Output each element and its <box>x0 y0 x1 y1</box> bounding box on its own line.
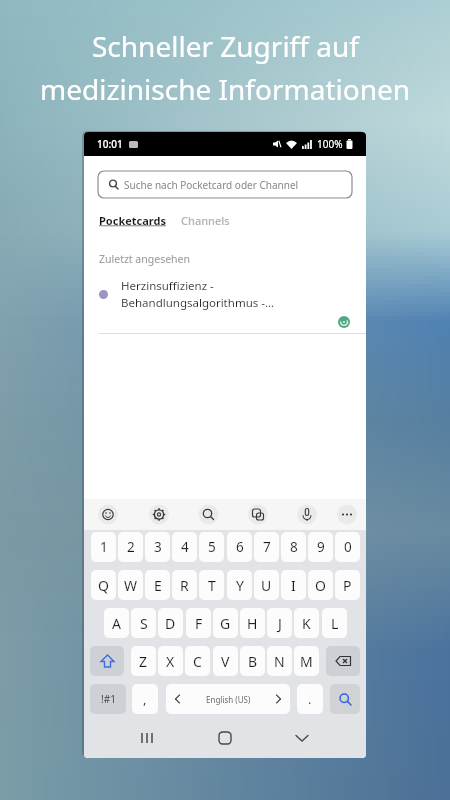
button[interactable]: X <box>158 646 183 676</box>
button[interactable]: 4 <box>172 532 197 562</box>
staticText: G <box>220 614 231 633</box>
staticText: J <box>278 614 282 633</box>
staticText: X <box>166 652 175 671</box>
button[interactable]: M <box>294 646 319 676</box>
staticText: Suche nach Pocketcard oder Channel <box>124 178 299 192</box>
staticText: 9 <box>317 538 325 556</box>
button[interactable]: T <box>199 570 224 600</box>
staticText: B <box>248 652 258 671</box>
button[interactable]: English (US) <box>166 684 290 714</box>
button[interactable]: Suche nach Pocketcard oder Channel <box>98 171 352 198</box>
button[interactable]: Y <box>227 570 252 600</box>
button[interactable]: R <box>172 570 197 600</box>
button[interactable]: V <box>213 646 238 676</box>
button[interactable] <box>326 646 360 676</box>
button[interactable]: K <box>294 608 319 638</box>
button[interactable]: , <box>132 684 158 714</box>
button[interactable] <box>319 499 366 530</box>
button[interactable]: O <box>308 570 333 600</box>
staticText: 6 <box>236 538 244 556</box>
staticText: Channels <box>181 213 230 228</box>
button[interactable] <box>272 720 366 758</box>
button[interactable]: 7 <box>254 532 279 562</box>
staticText: A <box>112 614 121 633</box>
staticText: 0 <box>344 538 352 556</box>
button[interactable]: G <box>213 608 238 638</box>
button[interactable]: 1 <box>91 532 116 562</box>
staticText: English (US) <box>206 694 251 705</box>
staticText: Zuletzt angesehen <box>99 252 190 266</box>
button[interactable]: P <box>335 570 360 600</box>
staticText: K <box>302 614 311 633</box>
button[interactable]: H <box>240 608 265 638</box>
staticText: P <box>343 576 352 595</box>
staticText: 2 <box>127 538 135 556</box>
staticText: C <box>193 652 202 671</box>
staticText: 4 <box>181 538 189 556</box>
button[interactable] <box>178 720 272 758</box>
staticText: Pocketcards <box>99 213 166 228</box>
staticText: . <box>308 690 312 708</box>
staticText: H <box>247 614 258 633</box>
button[interactable]: U <box>254 570 279 600</box>
button[interactable]: 3 <box>145 532 170 562</box>
button[interactable]: N <box>267 646 292 676</box>
button[interactable] <box>131 499 178 530</box>
staticText: Z <box>139 652 148 671</box>
button[interactable]: Q <box>91 570 116 600</box>
button[interactable] <box>225 499 272 530</box>
button[interactable]: 2 <box>118 532 143 562</box>
button[interactable]: 6 <box>227 532 252 562</box>
staticText: 3 <box>154 538 162 556</box>
button[interactable]: D <box>158 608 183 638</box>
button[interactable]: J <box>267 608 292 638</box>
button[interactable]: 9 <box>308 532 333 562</box>
staticText: 1 <box>100 538 108 556</box>
button[interactable]: Herzinsuffizienz - <box>84 275 366 333</box>
button[interactable]: !#1 <box>90 684 126 714</box>
button[interactable]: F <box>186 608 211 638</box>
button[interactable]: S <box>131 608 156 638</box>
button[interactable] <box>272 499 319 530</box>
button[interactable]: W <box>118 570 143 600</box>
staticText: 5 <box>208 538 216 556</box>
staticText: W <box>124 576 138 595</box>
staticText: L <box>331 614 339 633</box>
button[interactable]: 8 <box>281 532 306 562</box>
button[interactable]: E <box>145 570 170 600</box>
button[interactable] <box>84 720 178 758</box>
staticText: E <box>154 576 162 595</box>
staticText: 100% <box>317 137 343 151</box>
button[interactable] <box>178 499 225 530</box>
staticText: F <box>195 614 203 633</box>
staticText: M <box>300 652 313 671</box>
staticText: D <box>165 614 176 633</box>
button[interactable]: 5 <box>199 532 224 562</box>
button[interactable]: Pocketcards <box>99 213 166 228</box>
staticText: Y <box>236 576 244 595</box>
staticText: , <box>143 690 147 708</box>
staticText: Herzinsuffizienz - <box>121 278 214 294</box>
staticText: O <box>315 576 326 595</box>
staticText: Schneller Zugriff auf <box>92 27 359 65</box>
staticText: !#1 <box>101 692 116 706</box>
staticText: medizinische Informationen <box>40 70 411 108</box>
button[interactable]: 0 <box>335 532 360 562</box>
button[interactable] <box>330 684 360 714</box>
button[interactable] <box>84 499 131 530</box>
button[interactable]: Channels <box>181 213 230 228</box>
staticText: N <box>274 652 285 671</box>
staticText: 7 <box>263 538 271 556</box>
button[interactable]: . <box>297 684 323 714</box>
staticText: Behandlungsalgorithmus -... <box>121 295 275 311</box>
button[interactable]: C <box>185 646 210 676</box>
staticText: U <box>261 576 272 595</box>
button[interactable]: A <box>104 608 129 638</box>
button[interactable]: L <box>322 608 347 638</box>
staticText: 8 <box>290 538 298 556</box>
button[interactable] <box>90 646 124 676</box>
button[interactable]: Z <box>131 646 156 676</box>
staticText: Q <box>98 576 109 595</box>
button[interactable]: I <box>281 570 306 600</box>
button[interactable]: B <box>240 646 265 676</box>
